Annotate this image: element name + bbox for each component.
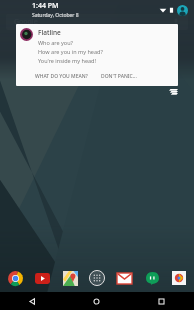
staticText: 1:44 PM (32, 1, 59, 11)
button[interactable]: Flatline (16, 24, 178, 86)
button[interactable]: Google (6, 14, 188, 30)
button[interactable]: DON'T PANIC... (98, 70, 140, 83)
button[interactable]: Hangouts (142, 268, 162, 288)
button[interactable]: Account (177, 5, 188, 16)
button[interactable]: Photos (169, 268, 189, 288)
button[interactable]: Maps (60, 268, 80, 288)
staticText: You're inside my head! (38, 57, 96, 64)
staticText: Flatline (38, 28, 61, 37)
staticText: How are you in my head? (38, 48, 103, 55)
other: Wi-Fi (159, 6, 167, 14)
staticText: Who are you? (38, 39, 73, 46)
staticText: Google (14, 17, 38, 27)
staticText: DON'T PANIC... (101, 73, 137, 80)
button[interactable]: YouTube (32, 268, 52, 288)
button[interactable]: Voice search (171, 17, 181, 27)
button[interactable]: Recent apps (129, 292, 194, 310)
staticText: WHAT DO YOU MEAN? (35, 73, 88, 80)
button[interactable]: Gmail (114, 268, 134, 288)
other: Battery (169, 6, 174, 14)
staticText: Saturday, October 8 (32, 12, 79, 19)
button[interactable]: Home (64, 292, 129, 310)
button[interactable]: Back (0, 292, 64, 310)
button[interactable]: Apps (87, 268, 107, 288)
button[interactable]: Chrome (5, 268, 25, 288)
button[interactable]: WHAT DO YOU MEAN? (32, 70, 91, 83)
button[interactable]: Expand notifications (169, 89, 178, 95)
